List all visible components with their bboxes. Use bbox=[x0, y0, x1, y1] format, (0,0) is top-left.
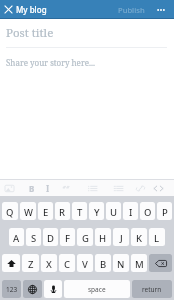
button[interactable]: bold bbox=[24, 180, 40, 196]
button[interactable]: italic bbox=[40, 180, 56, 196]
button[interactable]: Dictate bbox=[44, 280, 62, 298]
button[interactable]: quote bbox=[58, 180, 74, 196]
staticText: Publish bbox=[118, 5, 145, 15]
button[interactable]: O bbox=[140, 202, 155, 220]
staticText: P bbox=[162, 206, 168, 219]
button[interactable]: C bbox=[59, 254, 75, 272]
button[interactable]: J bbox=[113, 228, 129, 246]
staticText: W bbox=[24, 206, 33, 219]
staticText: return bbox=[142, 285, 162, 294]
button[interactable]: E bbox=[38, 202, 53, 220]
button[interactable]: A bbox=[9, 228, 24, 246]
button[interactable]: U bbox=[106, 202, 121, 220]
button[interactable]: M bbox=[131, 254, 147, 272]
staticText: Y bbox=[94, 206, 100, 219]
staticText: T bbox=[77, 206, 83, 219]
button[interactable]: R bbox=[55, 202, 70, 220]
staticText: B bbox=[29, 183, 35, 194]
button[interactable]: Q bbox=[2, 202, 18, 220]
staticText: I bbox=[129, 206, 133, 219]
staticText: 123 bbox=[6, 285, 18, 294]
staticText: H bbox=[99, 232, 107, 245]
button[interactable]: Change keyboard bbox=[23, 280, 42, 298]
staticText: R bbox=[59, 206, 66, 219]
button[interactable]: X bbox=[41, 254, 57, 272]
button[interactable]: G bbox=[77, 228, 93, 246]
button[interactable]: B bbox=[95, 254, 111, 272]
staticText: I bbox=[46, 183, 50, 194]
button[interactable]: image bbox=[1, 180, 17, 196]
staticText: Post title bbox=[6, 25, 54, 41]
staticText: F bbox=[65, 232, 71, 245]
button[interactable]: V bbox=[77, 254, 93, 272]
button[interactable]: H bbox=[95, 228, 111, 246]
staticText: C bbox=[64, 258, 71, 271]
staticText: K bbox=[136, 232, 143, 245]
staticText: Share your story here... bbox=[6, 57, 95, 68]
staticText: A bbox=[13, 232, 20, 245]
button[interactable]: Numbers and symbols bbox=[2, 280, 21, 298]
button[interactable]: T bbox=[72, 202, 87, 220]
button[interactable]: return bbox=[132, 280, 172, 298]
button[interactable]: W bbox=[20, 202, 36, 220]
button[interactable]: P bbox=[157, 202, 172, 220]
button[interactable]: More options bbox=[152, 0, 170, 19]
staticText: D bbox=[47, 232, 54, 245]
staticText: E bbox=[43, 206, 49, 219]
button[interactable]: link bbox=[132, 180, 148, 196]
staticText: O bbox=[144, 206, 152, 219]
button[interactable]: Z bbox=[22, 254, 39, 272]
staticText: S bbox=[31, 232, 37, 245]
staticText: Z bbox=[28, 258, 34, 271]
button[interactable]: numbers bbox=[110, 180, 126, 196]
button[interactable]: bullets bbox=[84, 180, 100, 196]
staticText: V bbox=[82, 258, 88, 271]
button[interactable]: F bbox=[60, 228, 75, 246]
staticText: U bbox=[110, 206, 118, 219]
staticText: J bbox=[120, 232, 123, 245]
staticText: G bbox=[82, 232, 89, 245]
button[interactable]: Y bbox=[89, 202, 104, 220]
staticText: X bbox=[46, 258, 52, 271]
button[interactable]: space bbox=[64, 280, 130, 298]
button[interactable]: code bbox=[150, 180, 166, 196]
button[interactable]: D bbox=[43, 228, 58, 246]
button[interactable]: N bbox=[113, 254, 129, 272]
button[interactable]: Backspace bbox=[149, 254, 172, 272]
staticText: M bbox=[135, 258, 144, 271]
staticText: L bbox=[154, 232, 160, 245]
staticText: My blog bbox=[16, 4, 47, 15]
button[interactable]: I bbox=[123, 202, 138, 220]
button[interactable]: S bbox=[26, 228, 41, 246]
button[interactable]: L bbox=[149, 228, 165, 246]
staticText: space bbox=[88, 285, 106, 294]
button[interactable]: Publish bbox=[116, 0, 147, 19]
staticText: B bbox=[100, 258, 107, 271]
staticText: Q bbox=[6, 206, 14, 219]
button[interactable]: K bbox=[131, 228, 147, 246]
button[interactable]: Shift bbox=[2, 254, 20, 272]
button[interactable]: Close bbox=[0, 0, 16, 19]
staticText: N bbox=[117, 258, 125, 271]
